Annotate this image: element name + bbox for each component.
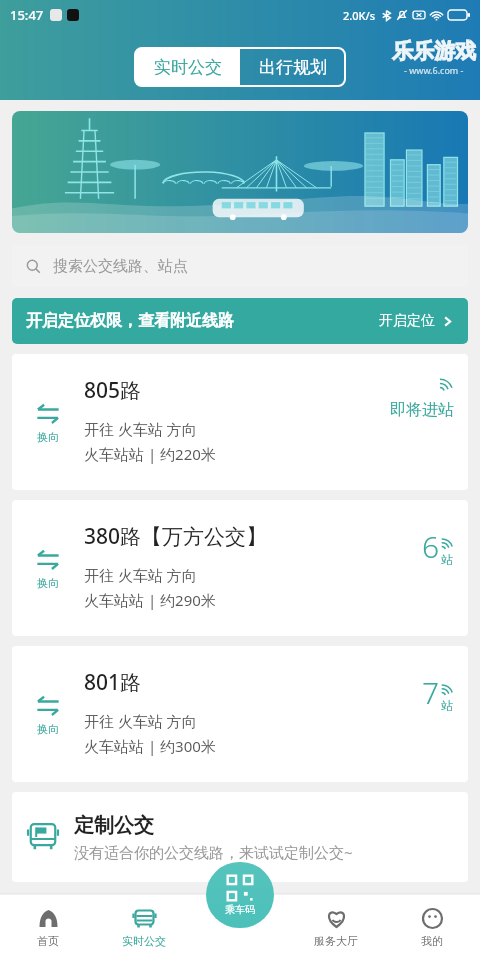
staticText: 首页 — [37, 934, 59, 948]
button[interactable]: 首页 — [0, 894, 96, 960]
staticText: 换向 — [37, 722, 59, 736]
staticText: 15:47 — [10, 6, 44, 24]
staticText: 6 — [422, 526, 440, 567]
staticText: 实时公交 — [122, 934, 166, 948]
button[interactable]: 实时公交 — [96, 894, 192, 960]
staticText: 火车站站 | 约220米 — [84, 444, 216, 464]
staticText: 站 — [441, 698, 453, 713]
staticText: 出行规划 — [259, 57, 327, 78]
button[interactable]: 换向 — [12, 646, 468, 782]
staticText: 火车站站 | 约300米 — [84, 736, 216, 756]
staticText: 服务大厅 — [314, 934, 358, 948]
staticText: 380路【万方公交】 — [84, 522, 268, 551]
staticText: 开往 火车站 方向 — [84, 419, 197, 439]
button[interactable]: 定制公交 — [12, 792, 468, 882]
staticText: - www.6.com - — [404, 64, 464, 76]
button[interactable]: 乘车码 — [206, 862, 274, 928]
button[interactable]: 实时公交 — [135, 48, 240, 86]
button[interactable]: 搜索公交线路、站点 — [12, 245, 468, 287]
button[interactable]: 换向 — [12, 354, 84, 490]
staticText: 开启定位权限，查看附近线路 — [26, 311, 234, 331]
button[interactable]: 出行规划 — [240, 48, 345, 86]
staticText: 7 — [422, 672, 440, 713]
staticText: 搜索公交线路、站点 — [53, 257, 188, 276]
staticText: 实时公交 — [154, 57, 222, 78]
staticText: 换向 — [37, 576, 59, 590]
staticText: 换向 — [37, 430, 59, 444]
staticText: 我的 — [421, 934, 443, 948]
button[interactable]: 换向 — [12, 500, 84, 636]
button[interactable] — [12, 111, 468, 233]
staticText: 开往 火车站 方向 — [84, 711, 197, 731]
button[interactable]: 换向 — [12, 500, 468, 636]
staticText: 站 — [441, 552, 453, 567]
staticText: 乘车码 — [225, 903, 255, 916]
staticText: 定制公交 — [74, 813, 154, 838]
button[interactable]: 开启定位权限，查看附近线路 — [12, 298, 468, 344]
staticText: 没有适合你的公交线路，来试试定制公交~ — [74, 842, 353, 862]
staticText: 乐乐游戏 — [392, 38, 476, 64]
staticText: 即将进站 — [390, 400, 454, 420]
staticText: 开往 火车站 方向 — [84, 565, 197, 585]
button[interactable]: 换向 — [12, 354, 468, 490]
staticText: 2.0K/s — [343, 8, 376, 23]
staticText: 火车站站 | 约290米 — [84, 590, 216, 610]
staticText: 开启定位 — [379, 312, 435, 330]
button[interactable]: 换向 — [12, 646, 84, 782]
button[interactable]: 服务大厅 — [288, 894, 384, 960]
staticText: 801路 — [84, 668, 142, 697]
staticText: 805路 — [84, 376, 142, 405]
button[interactable]: 我的 — [384, 894, 480, 960]
